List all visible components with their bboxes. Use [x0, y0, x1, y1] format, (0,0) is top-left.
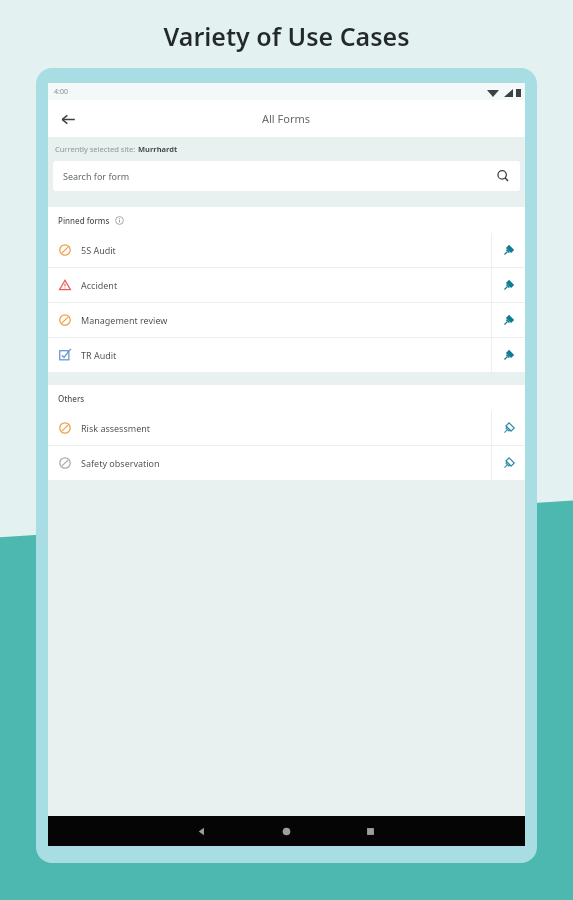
button[interactable]: Back — [48, 816, 207, 846]
button[interactable]: Search for form — [53, 161, 520, 191]
staticText: Accident — [81, 279, 118, 291]
button[interactable]: Back — [54, 105, 82, 133]
staticText: Murrhardt — [138, 144, 178, 154]
staticText: Variety of Use Cases — [0, 19, 573, 53]
other: Search — [496, 169, 510, 183]
staticText: Others — [58, 393, 85, 404]
button[interactable]: Recents — [366, 816, 525, 846]
button[interactable]: Unpin TR Audit — [492, 338, 525, 372]
staticText: Safety observation — [81, 457, 160, 469]
button[interactable]: TR Audit — [48, 338, 525, 372]
staticText: Risk assessment — [81, 422, 151, 434]
button[interactable]: Accident — [48, 268, 525, 302]
button[interactable]: Home — [207, 816, 366, 846]
button[interactable]: Pin Risk assessment — [492, 411, 525, 445]
staticText: TR Audit — [81, 349, 117, 361]
button[interactable]: Unpin Accident — [492, 268, 525, 302]
button[interactable]: Risk assessment — [48, 411, 525, 445]
button[interactable]: Unpin 5S Audit — [492, 233, 525, 267]
staticText: Pinned forms — [58, 215, 110, 226]
button[interactable]: 5S Audit — [48, 233, 525, 267]
button[interactable]: Pin Safety observation — [492, 446, 525, 480]
staticText: 5S Audit — [81, 244, 116, 256]
button[interactable]: Management review — [48, 303, 525, 337]
staticText: Currently selected site: — [55, 144, 138, 154]
staticText: Search for form — [63, 170, 130, 182]
button[interactable]: Safety observation — [48, 446, 525, 480]
button[interactable]: Unpin Management review — [492, 303, 525, 337]
staticText: 4:00 — [54, 87, 68, 97]
staticText: Management review — [81, 314, 168, 326]
staticText: All Forms — [262, 111, 311, 126]
